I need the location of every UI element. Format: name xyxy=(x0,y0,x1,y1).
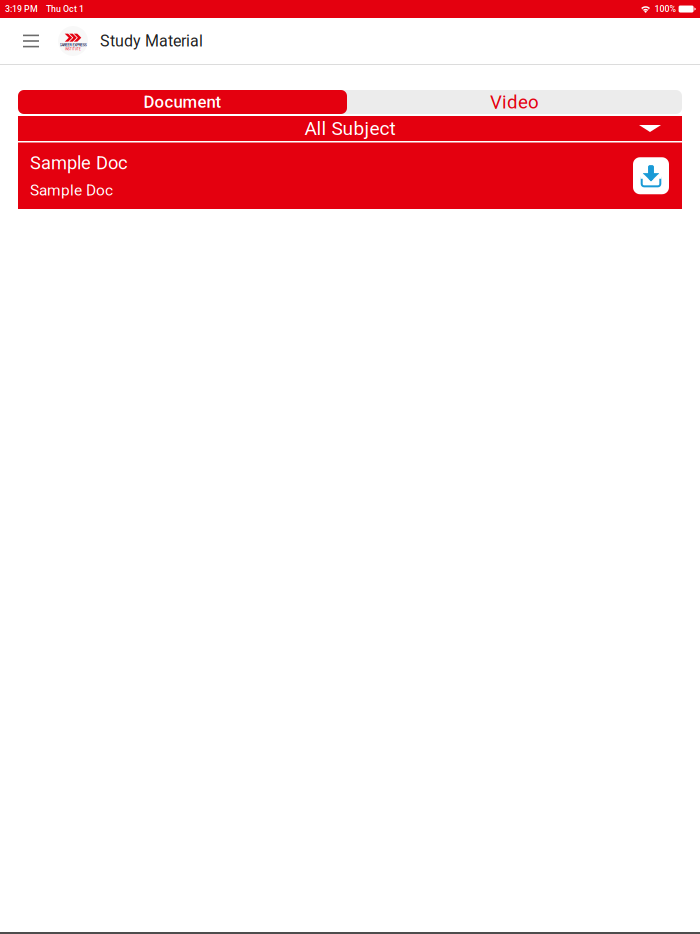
staticText: All Subject xyxy=(304,117,395,140)
button[interactable]: Menu xyxy=(12,18,50,64)
staticText: 100% xyxy=(655,4,676,14)
staticText: 3:19 PM xyxy=(5,4,38,14)
button[interactable]: All Subject xyxy=(18,116,682,141)
staticText: Video xyxy=(490,91,539,113)
staticText: Thu Oct 1 xyxy=(46,4,84,14)
button[interactable]: Sample Doc xyxy=(18,142,682,209)
staticText: Sample Doc xyxy=(30,181,113,199)
staticText: INSTITUTE xyxy=(65,47,81,51)
staticText: Sample Doc xyxy=(30,152,128,174)
button[interactable]: Video xyxy=(347,90,682,114)
staticText: CAREER EXPRESS xyxy=(59,43,86,47)
button[interactable]: Document xyxy=(18,90,347,114)
staticText: Study Material xyxy=(100,32,203,50)
staticText: Document xyxy=(143,92,221,112)
